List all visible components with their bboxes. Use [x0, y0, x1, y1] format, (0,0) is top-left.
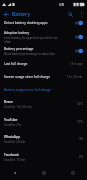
button[interactable] [0, 58, 87, 70]
button[interactable] [0, 147, 87, 164]
button[interactable]: Search [65, 9, 75, 19]
staticText: 3:09 [59, 3, 65, 6]
button[interactable]: Back [0, 165, 29, 180]
staticText: Used for 17 min [4, 158, 26, 162]
staticText: 13% [77, 120, 83, 124]
button[interactable]: Toggle [74, 33, 84, 41]
staticText: YouTube [4, 118, 18, 122]
staticText: Used for 20 min [4, 140, 26, 144]
button[interactable] [0, 19, 87, 29]
staticText: Show battery percentage in status bar [4, 52, 55, 56]
staticText: 3% [79, 137, 83, 141]
staticText: Battery percentage [4, 47, 34, 51]
staticText: Battery usage since full charge [4, 88, 51, 92]
button[interactable] [0, 94, 87, 111]
button[interactable]: Toggle [74, 19, 84, 27]
staticText: WhatsApp [4, 135, 20, 139]
button[interactable]: Back [1, 9, 11, 19]
button[interactable] [0, 82, 87, 94]
button[interactable]: More options [76, 9, 86, 19]
staticText: Adaptive battery [4, 31, 30, 35]
staticText: Facebook [4, 153, 19, 157]
button[interactable]: Recents [58, 165, 87, 180]
button[interactable] [0, 112, 87, 129]
staticText: 13 hr ago [70, 62, 83, 66]
staticText: Detect battery draining apps [4, 21, 48, 25]
button[interactable] [0, 70, 87, 82]
staticText: Last full charge [4, 62, 28, 66]
staticText: 1 hr, 33 min [67, 75, 83, 79]
staticText: Limit battery for apps that you don't us… [4, 36, 58, 40]
button[interactable] [0, 45, 87, 58]
staticText: Used for 2 hr [4, 123, 22, 127]
staticText: Used for 1 hr, 55 min [4, 105, 32, 109]
staticText: often [4, 40, 12, 44]
staticText: 14% [77, 102, 83, 106]
button[interactable] [0, 130, 87, 147]
button[interactable]: Home [29, 165, 58, 180]
staticText: Screen usage since full charge [4, 75, 51, 79]
button[interactable] [0, 29, 87, 45]
staticText: 2% [79, 155, 83, 159]
staticText: Battery [12, 11, 30, 18]
staticText: Brave [4, 100, 13, 104]
button[interactable]: Toggle [74, 47, 84, 55]
